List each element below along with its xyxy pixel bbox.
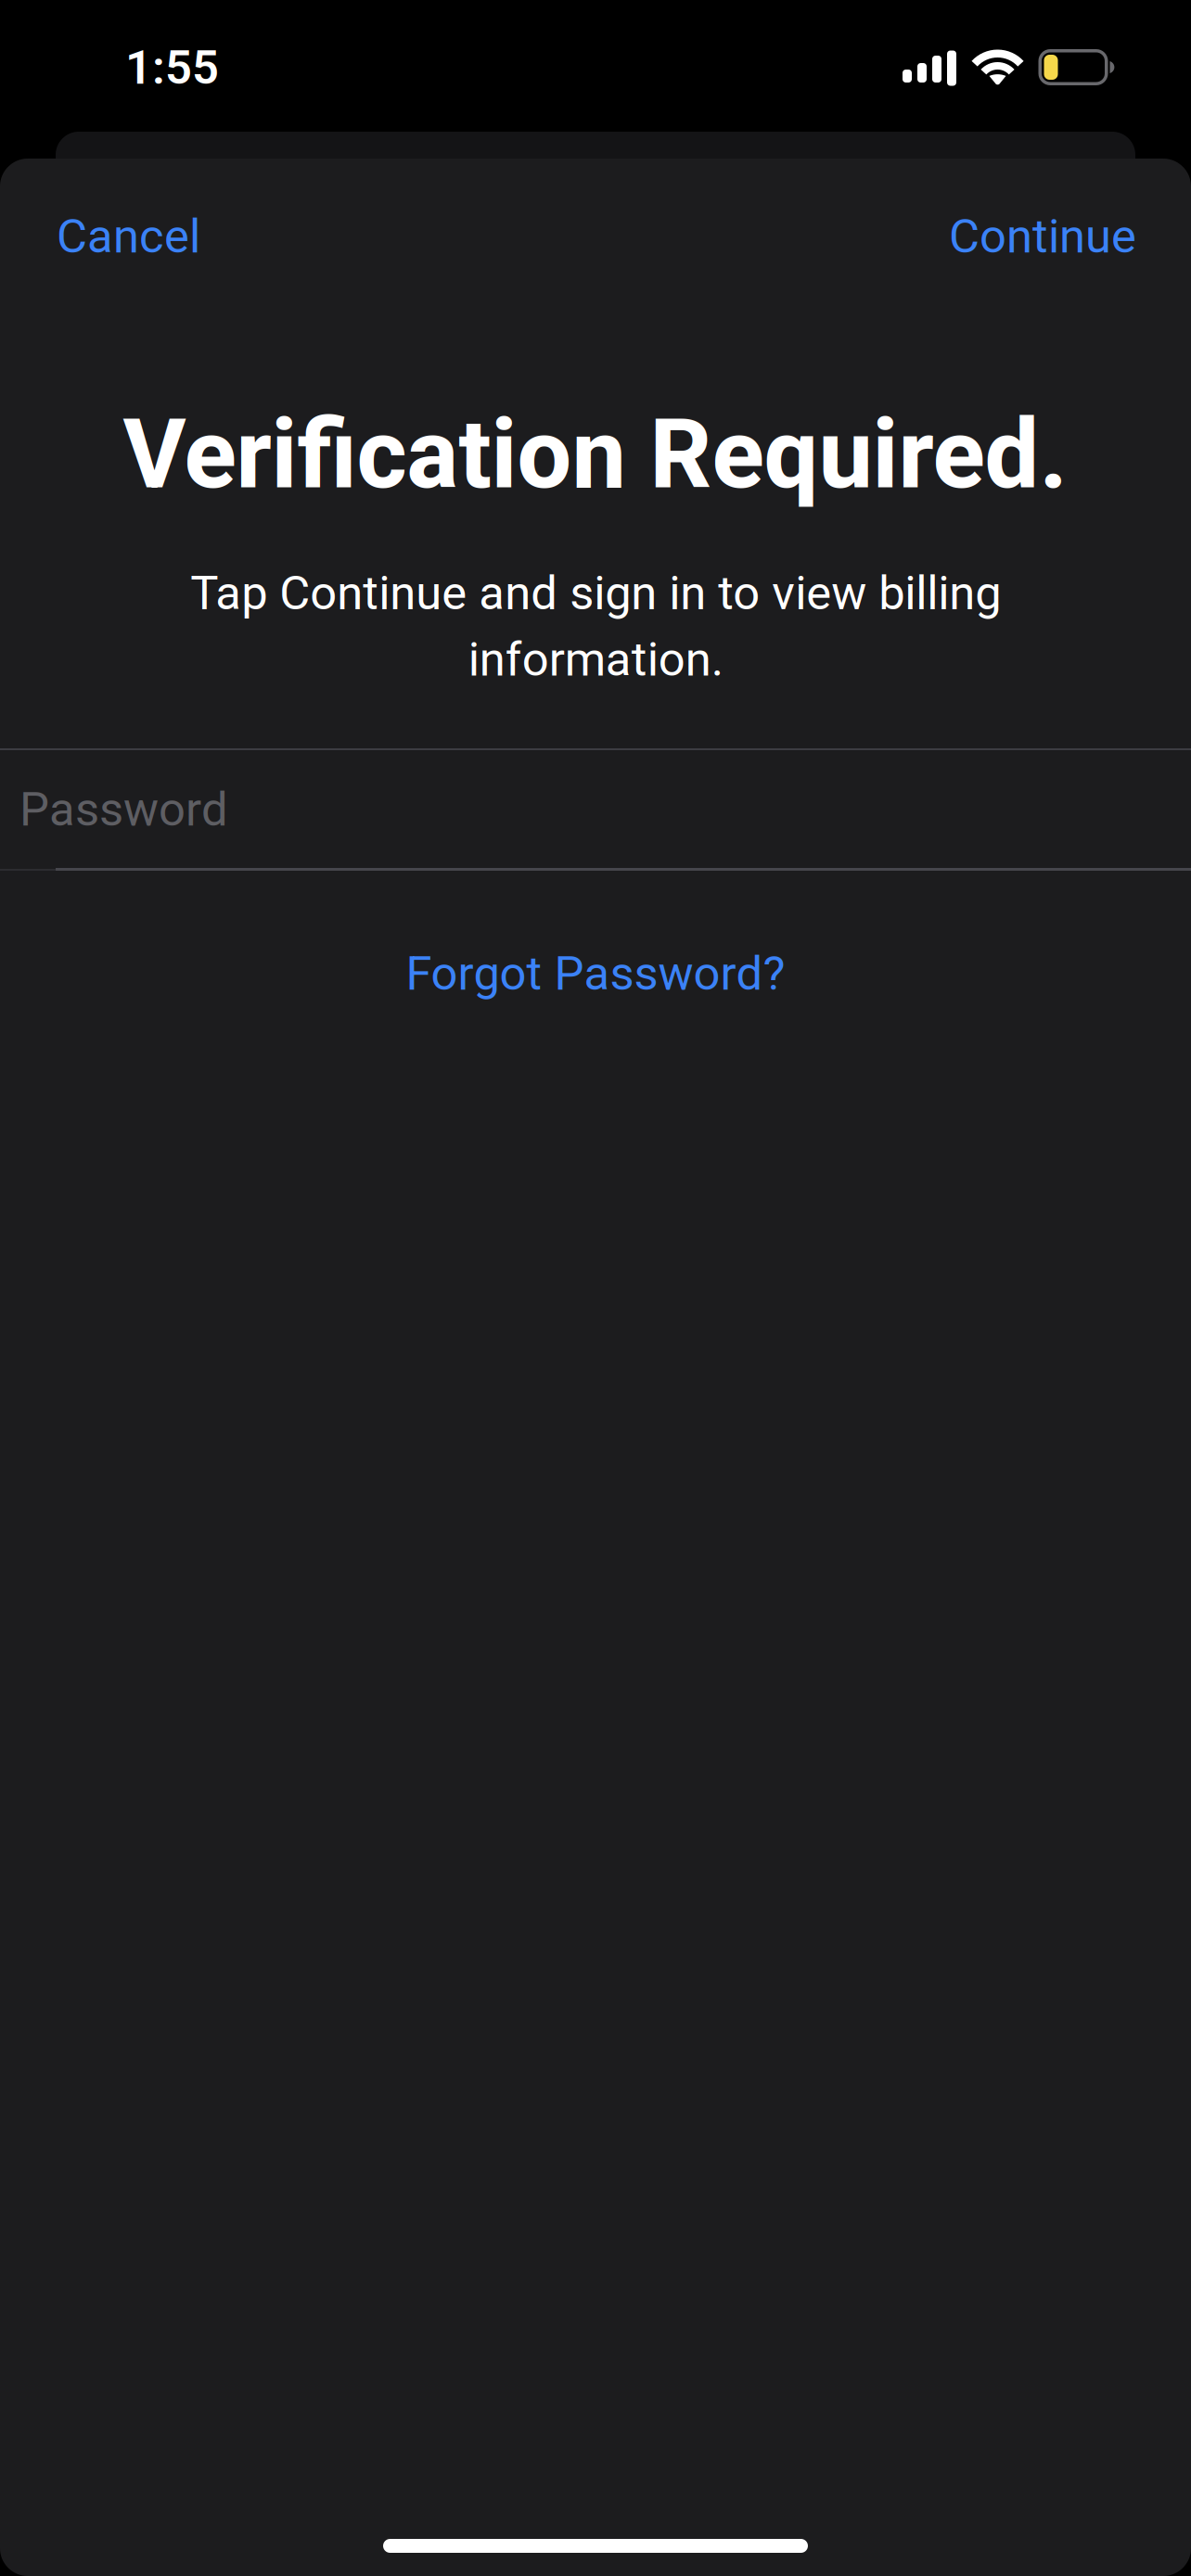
button[interactable]: Forgot Password? bbox=[378, 929, 813, 1018]
staticText: Tap Continue and sign in to view billing… bbox=[190, 566, 1001, 687]
staticText: Forgot Password? bbox=[406, 946, 785, 1001]
staticText: 1:55 bbox=[125, 40, 219, 95]
staticText: Cancel bbox=[57, 209, 200, 264]
staticText: Verification Required. bbox=[123, 398, 1068, 511]
staticText: Continue bbox=[949, 209, 1136, 264]
staticText: Password bbox=[19, 782, 228, 837]
button[interactable]: Cancel bbox=[0, 175, 279, 298]
button[interactable]: Password bbox=[0, 748, 1191, 870]
button[interactable]: Continue bbox=[914, 175, 1191, 298]
